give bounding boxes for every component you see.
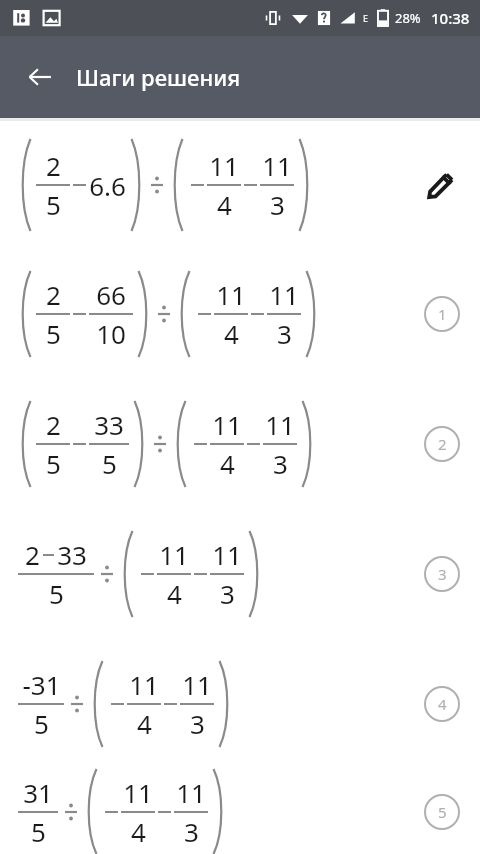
staticText: 11 bbox=[265, 407, 295, 442]
staticText: 5 bbox=[46, 187, 61, 222]
staticText: 6.6 bbox=[89, 168, 126, 203]
staticText: 11 bbox=[159, 537, 189, 572]
staticText: 66 bbox=[96, 277, 126, 312]
staticText: 4 bbox=[167, 576, 182, 611]
staticText: 4 bbox=[217, 187, 232, 222]
staticText: 11 bbox=[212, 537, 242, 572]
button[interactable]: -31 bbox=[0, 639, 480, 769]
staticText: 5 bbox=[49, 576, 64, 611]
staticText: 4 bbox=[137, 706, 152, 741]
button[interactable]: 31 bbox=[0, 769, 480, 854]
staticText: 5 bbox=[46, 446, 61, 481]
button[interactable]: Back bbox=[16, 53, 64, 101]
staticText: 5 bbox=[34, 706, 49, 741]
button[interactable]: 2 bbox=[0, 121, 480, 249]
staticText: 5 bbox=[102, 446, 117, 481]
staticText: 11 bbox=[262, 148, 292, 183]
staticText: 10:38 bbox=[431, 8, 470, 28]
staticText: 3 bbox=[438, 564, 447, 584]
staticText: 5 bbox=[31, 814, 46, 849]
staticText: 3 bbox=[273, 446, 288, 481]
staticText: 4 bbox=[131, 814, 146, 849]
staticText: 4 bbox=[438, 694, 447, 714]
staticText: 11 bbox=[209, 148, 239, 183]
staticText: 11 bbox=[123, 775, 153, 810]
staticText: 1 bbox=[438, 304, 447, 324]
staticText: 3 bbox=[184, 814, 199, 849]
button[interactable]: 2 bbox=[0, 509, 480, 639]
staticText: 5 bbox=[438, 802, 447, 822]
button[interactable]: Step 4 bbox=[422, 684, 462, 724]
staticText: 2 bbox=[46, 407, 61, 442]
staticText: 4 bbox=[224, 316, 239, 351]
staticText: E bbox=[363, 12, 369, 24]
staticText: -31 bbox=[22, 667, 61, 702]
staticText: 10 bbox=[96, 316, 126, 351]
staticText: 2 bbox=[46, 277, 61, 312]
staticText: 31 bbox=[23, 775, 53, 810]
staticText: 4 bbox=[220, 446, 235, 481]
staticText: 5 bbox=[46, 316, 61, 351]
staticText: 11 bbox=[212, 407, 242, 442]
button[interactable]: Edit bbox=[418, 163, 462, 207]
staticText: 33 bbox=[94, 407, 124, 442]
staticText: 11 bbox=[269, 277, 299, 312]
button[interactable]: Step 2 bbox=[422, 424, 462, 464]
staticText: 3 bbox=[190, 706, 205, 741]
button[interactable]: Step 3 bbox=[422, 554, 462, 594]
staticText: Шаги решения bbox=[76, 62, 241, 92]
button[interactable]: 2 bbox=[0, 379, 480, 509]
staticText: 33 bbox=[57, 537, 87, 572]
staticText: 11 bbox=[176, 775, 206, 810]
button[interactable]: 2 bbox=[0, 249, 480, 379]
staticText: 2 bbox=[25, 537, 40, 572]
staticText: 2 bbox=[438, 434, 447, 454]
button[interactable]: Step 1 bbox=[422, 294, 462, 334]
staticText: 3 bbox=[270, 187, 285, 222]
staticText: 2 bbox=[46, 148, 61, 183]
staticText: 3 bbox=[220, 576, 235, 611]
button[interactable]: Step 5 bbox=[422, 792, 462, 832]
staticText: 11 bbox=[182, 667, 212, 702]
staticText: 11 bbox=[129, 667, 159, 702]
staticText: 11 bbox=[216, 277, 246, 312]
staticText: 3 bbox=[277, 316, 292, 351]
staticText: 28% bbox=[395, 9, 421, 27]
